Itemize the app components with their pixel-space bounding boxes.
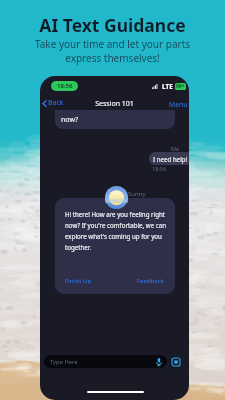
staticText: LTE <box>162 82 173 91</box>
button[interactable]: now? <box>55 110 175 129</box>
staticText: I need help! <box>153 155 188 163</box>
button[interactable]: Hi there! How are you feeling right now?… <box>55 198 175 294</box>
button[interactable]: I need help! <box>153 152 188 165</box>
button[interactable]: Back <box>42 97 64 109</box>
staticText: Type Here <box>50 358 78 366</box>
button[interactable]: Menu <box>169 100 188 109</box>
button[interactable]: Finish Up <box>65 277 92 285</box>
button[interactable]: Type Here <box>44 355 167 368</box>
button[interactable]: Feedback <box>137 277 164 285</box>
staticText: 18:56 <box>57 82 73 90</box>
staticText: Hi there! How are you feeling right now?… <box>65 210 172 251</box>
staticText: AI Text Guidance <box>0 13 225 37</box>
staticText: Me <box>171 145 180 152</box>
button[interactable]: Send <box>169 355 183 369</box>
staticText: Sunny <box>128 190 146 198</box>
staticText: Back <box>48 98 64 108</box>
staticText: Take your time and let your parts expres… <box>0 37 225 65</box>
staticText: 18:56 <box>152 165 167 172</box>
button[interactable]: Voice input <box>154 357 164 367</box>
staticText: Session 101 <box>40 99 189 109</box>
staticText: now? <box>61 115 79 125</box>
staticText: 99+ <box>176 83 185 90</box>
